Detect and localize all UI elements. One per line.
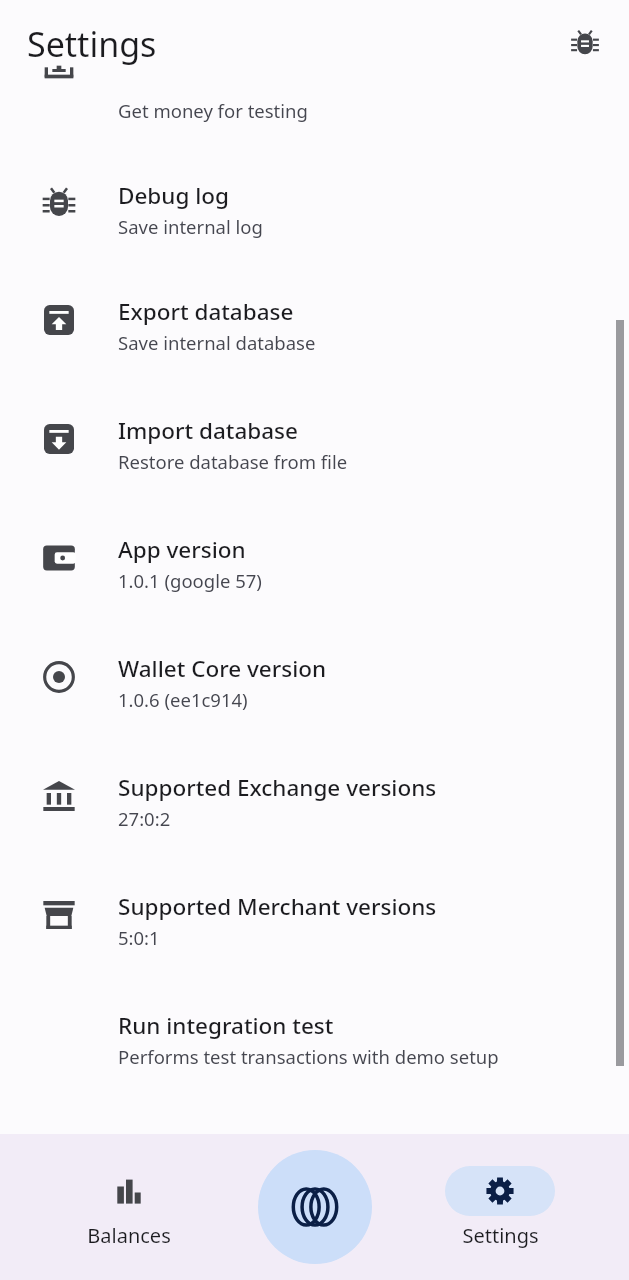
button[interactable]: App version <box>0 497 629 616</box>
button[interactable]: Supported Merchant versions <box>0 854 629 973</box>
button[interactable]: Export database <box>0 259 629 378</box>
staticText: 1.0.6 (ee1c914) <box>118 687 248 712</box>
button[interactable]: Settings <box>425 1160 575 1255</box>
button[interactable]: Import database <box>0 378 629 497</box>
staticText: 27:0:2 <box>118 806 171 831</box>
staticText: App version <box>118 534 246 565</box>
staticText: Settings <box>462 1222 539 1249</box>
staticText: Balances <box>87 1222 171 1249</box>
button[interactable]: Balances <box>54 1160 204 1255</box>
button[interactable]: Supported Exchange versions <box>0 735 629 854</box>
staticText: Run integration test <box>118 1010 334 1041</box>
staticText: Wallet Core version <box>118 653 327 684</box>
staticText: Debug log <box>118 180 229 211</box>
button[interactable]: Debug <box>557 16 613 72</box>
staticText: Get money for testing <box>118 98 308 123</box>
staticText: Settings <box>27 21 157 67</box>
staticText: Import database <box>118 415 298 446</box>
button[interactable]: Wallet Core version <box>0 616 629 735</box>
staticText: Save internal log <box>118 214 263 239</box>
staticText: Export database <box>118 296 294 327</box>
staticText: Supported Exchange versions <box>118 772 437 803</box>
staticText: 1.0.1 (google 57) <box>118 568 262 593</box>
staticText: 5:0:1 <box>118 925 160 950</box>
staticText: Save internal database <box>118 330 316 355</box>
staticText: Supported Merchant versions <box>118 891 437 922</box>
button[interactable]: Debug log <box>0 140 629 259</box>
button[interactable]: Taler <box>258 1150 372 1264</box>
staticText: Performs test transactions with demo set… <box>118 1044 499 1069</box>
button[interactable]: Run integration test <box>0 973 629 1092</box>
staticText: Restore database from file <box>118 449 348 474</box>
